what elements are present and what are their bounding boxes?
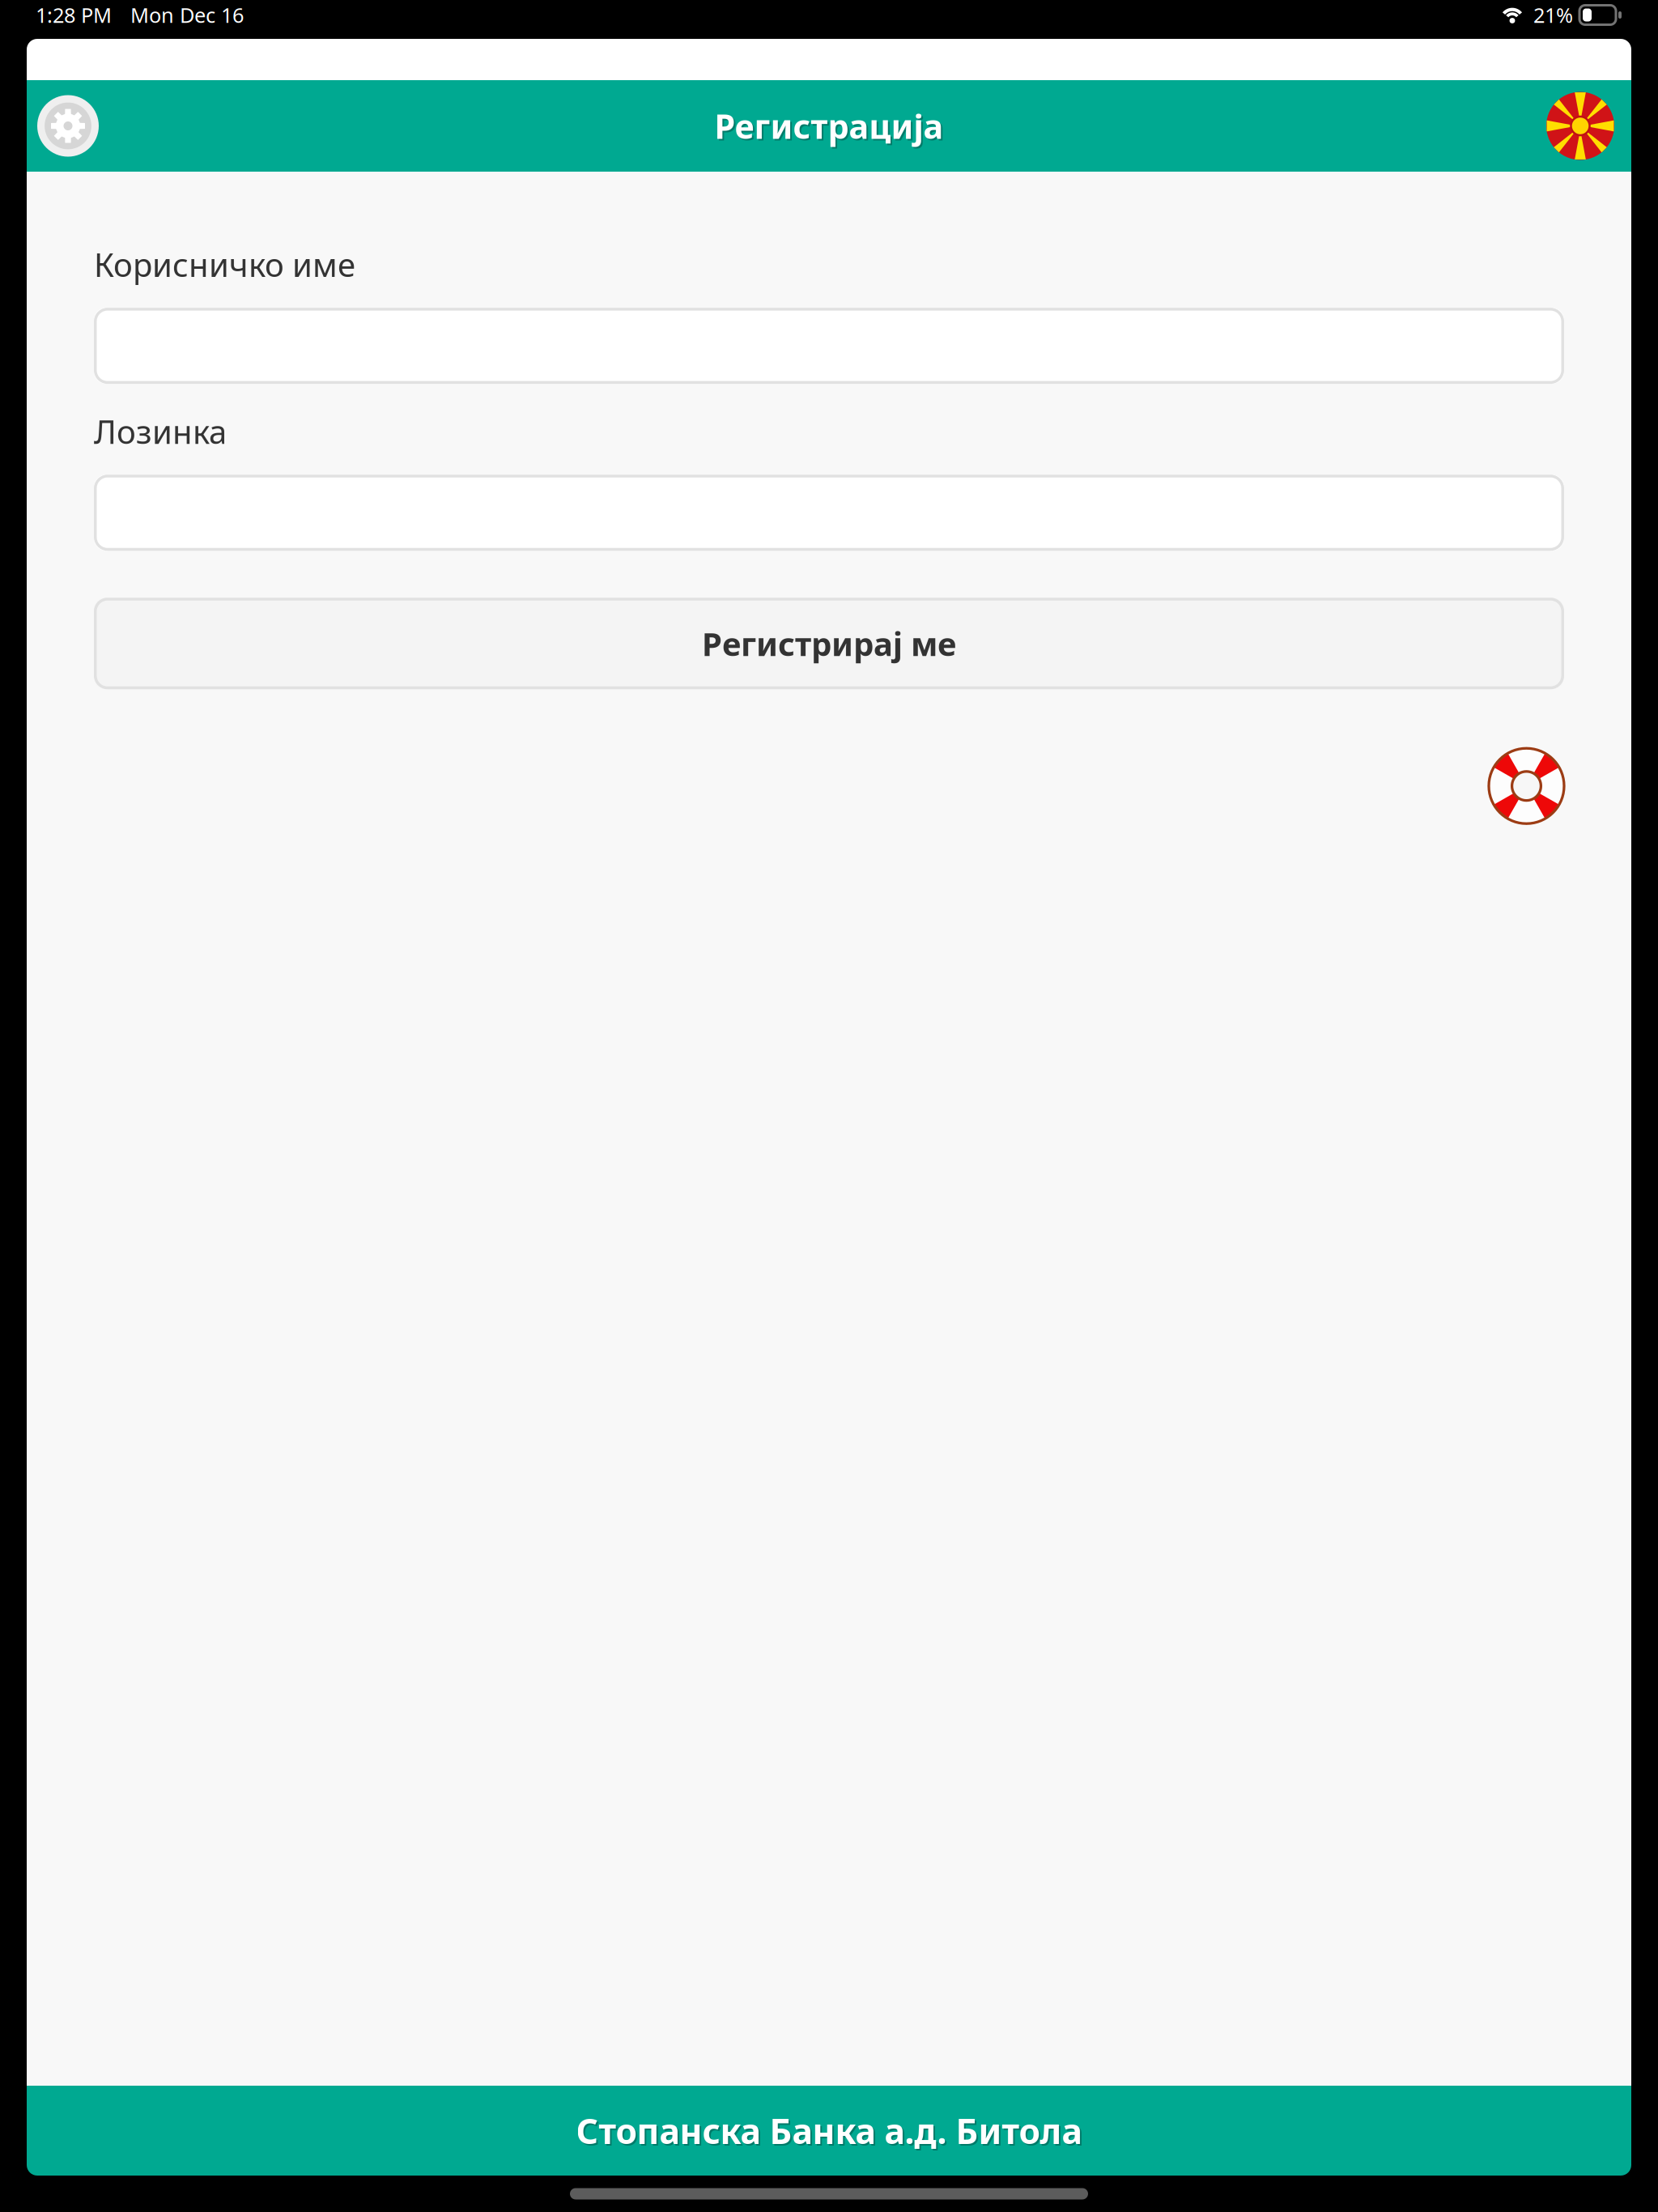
button[interactable]: Регистрирај ме bbox=[94, 598, 1564, 689]
button[interactable]: Корисничко име bbox=[94, 308, 1564, 384]
staticText: 21% bbox=[1533, 1, 1573, 29]
staticText: Регистрација bbox=[714, 104, 944, 148]
staticText: Корисничко име bbox=[94, 243, 355, 286]
staticText: Регистрација bbox=[716, 105, 945, 150]
staticText: Стопанска Банка а.д. Битола bbox=[576, 2108, 1082, 2154]
staticText: Mon Dec 16 bbox=[130, 1, 244, 29]
button[interactable]: Settings bbox=[37, 95, 99, 157]
staticText: Лозинка bbox=[94, 410, 227, 453]
button[interactable]: Help bbox=[1489, 748, 1564, 824]
staticText: Регистрирај ме bbox=[702, 622, 956, 665]
button[interactable]: Лозинка bbox=[94, 475, 1564, 551]
staticText: Стопанска Банка а.д. Битола bbox=[578, 2109, 1084, 2155]
button[interactable]: Change language bbox=[1546, 92, 1614, 160]
staticText: 1:28 PM bbox=[36, 1, 112, 29]
